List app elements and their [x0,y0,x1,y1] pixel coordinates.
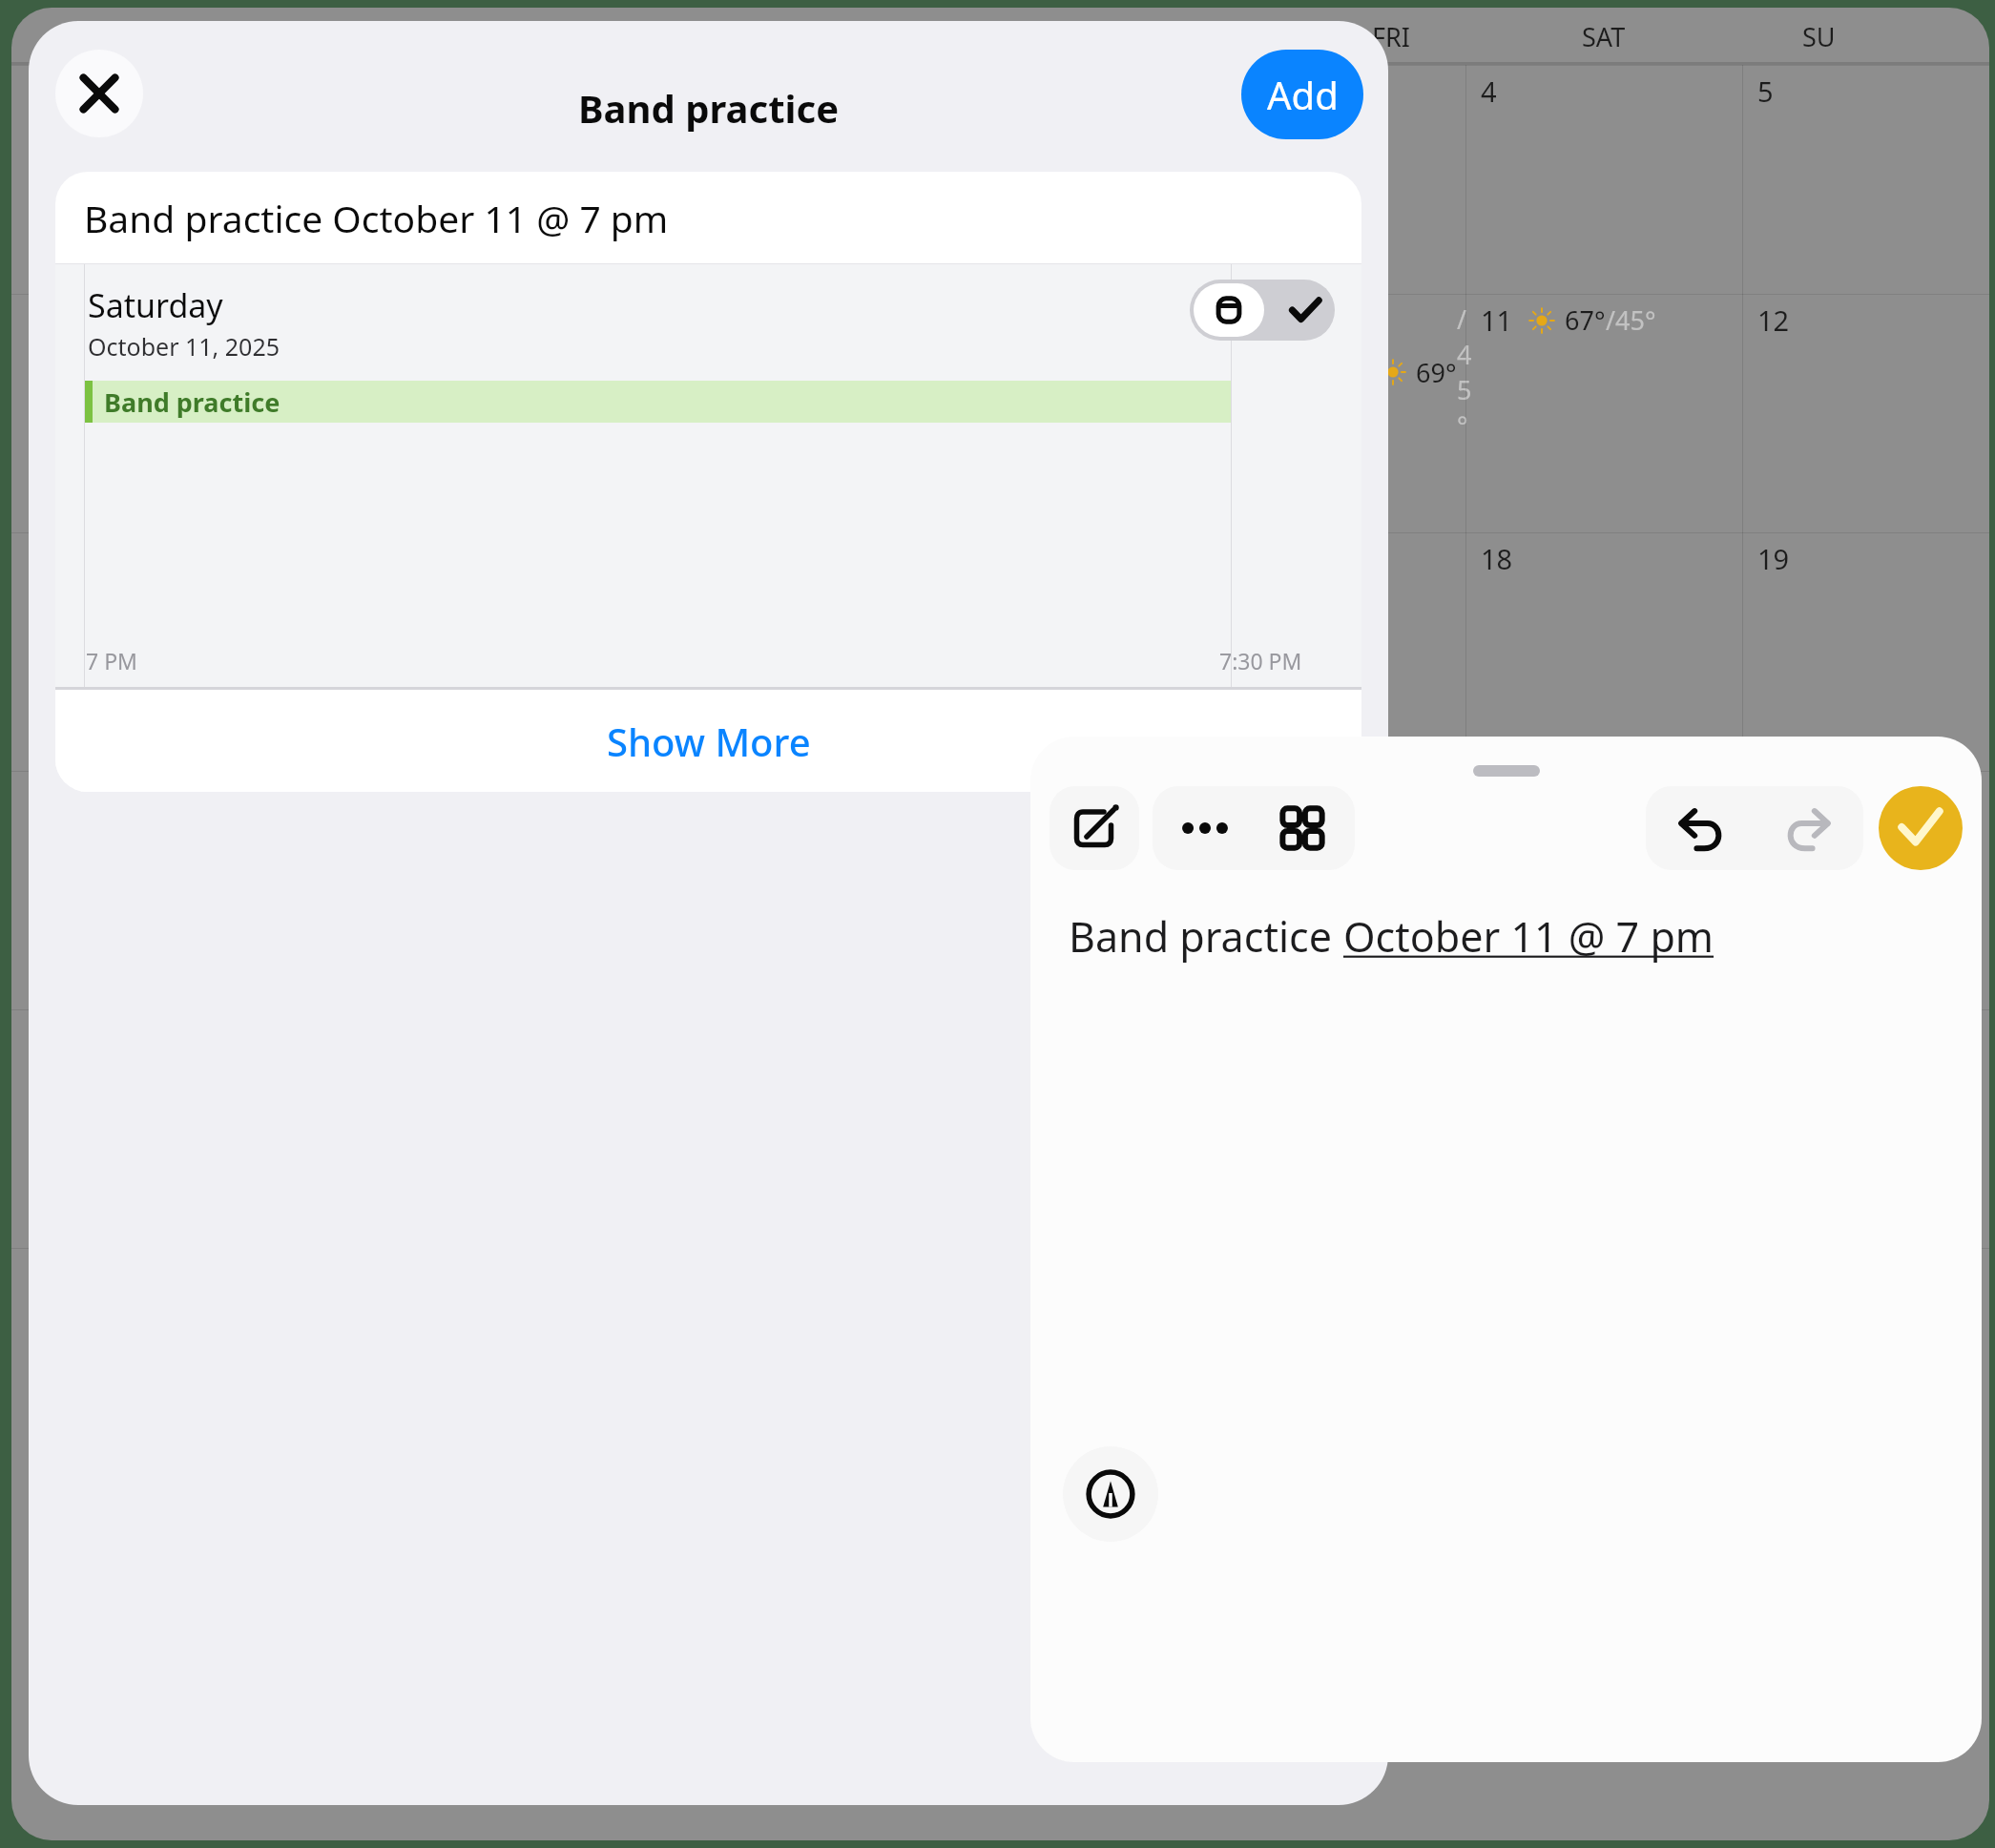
staticText: 69° [1416,355,1457,390]
staticText: 5 [1757,73,1774,110]
staticText: Saturday [88,283,223,327]
button[interactable]: New note [1049,786,1139,870]
staticText: 18 [1481,540,1513,577]
button[interactable]: Undo [1654,786,1750,870]
staticText: Show More [607,716,811,767]
staticText: 7 PM [86,646,137,675]
button[interactable]: More options [1159,786,1251,870]
button[interactable]: Pen tool [1063,1446,1158,1542]
staticText: 3 [1332,73,1348,110]
staticText: 11 [1481,301,1513,339]
staticText: SAT [1582,19,1626,54]
button[interactable]: Show More [55,690,1361,792]
staticText: 67° [1565,302,1606,338]
staticText: Band practice [578,82,840,134]
staticText: 19 [1757,540,1790,577]
staticText: Band practice [104,384,281,420]
button[interactable]: Redo [1759,786,1855,870]
button[interactable]: Close [55,50,143,137]
button[interactable]: Grid view [1257,786,1348,870]
button[interactable]: Done [1879,786,1963,870]
staticText: Band practice [1069,908,1343,965]
staticText: October 11 @ 7 pm [1343,908,1714,965]
staticText: /45° [1606,302,1656,338]
button[interactable]: Toggle calendar view [1190,280,1335,341]
staticText: Add [1267,69,1339,120]
staticText: 4 [1481,73,1497,110]
staticText: SU [1802,19,1836,54]
button[interactable]: Add [1241,50,1363,139]
staticText: /45° [1457,301,1465,443]
staticText: FRI [1372,19,1410,54]
staticText: October 11, 2025 [88,330,280,363]
staticText: 12 [1757,301,1790,339]
staticText: Band practice October 11 @ 7 pm [84,193,669,243]
staticText: 7:30 PM [1219,646,1302,675]
